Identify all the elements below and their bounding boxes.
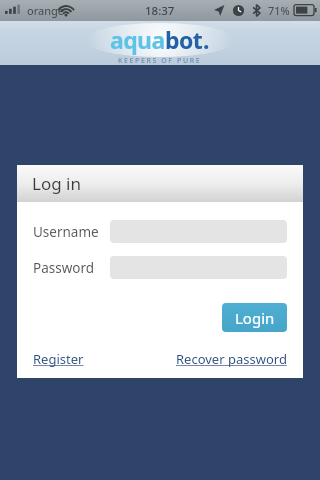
staticText: KEEPERS OF PURE (118, 56, 202, 66)
staticText: Password (33, 259, 110, 277)
button[interactable]: Recover password (176, 350, 287, 368)
staticText: Log in (32, 172, 81, 195)
staticText: Recover password (176, 350, 287, 368)
staticText: Register (33, 350, 84, 368)
staticText: 18:37 (145, 3, 175, 19)
staticText: 71% (268, 3, 290, 18)
staticText: bot (165, 24, 203, 55)
button[interactable]: Login (222, 303, 287, 332)
staticText: aqua (110, 24, 165, 55)
staticText: orange (27, 3, 64, 18)
button[interactable]: Register (33, 350, 84, 368)
staticText: . (203, 24, 210, 55)
staticText: Login (235, 308, 275, 328)
staticText: Username (33, 223, 110, 241)
